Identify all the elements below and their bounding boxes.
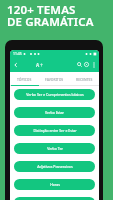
button[interactable]: Text size (34, 60, 44, 70)
button[interactable]: Back (11, 60, 20, 69)
button[interactable]: TÓPICOS (10, 72, 39, 86)
button[interactable]: Verbo Ter (14, 143, 95, 154)
staticText: Verbo Ser e Cumprimentos básicos (26, 92, 84, 97)
staticText: Verbo Ter (47, 146, 63, 151)
button[interactable]: FAVORITOS (39, 72, 69, 86)
button[interactable]: RECENTES (69, 72, 99, 86)
staticText: RECENTES (76, 77, 93, 82)
staticText: TÓPICOS (17, 77, 32, 82)
staticText: FAVORITOS (45, 77, 64, 82)
staticText: Distinção entre Ser e Estar (33, 128, 77, 133)
button[interactable]: Distinção entre Ser e Estar (14, 125, 95, 136)
button[interactable]: Horas (14, 179, 95, 190)
button[interactable]: Verbo Estar (14, 107, 95, 118)
staticText: DE GRAMÁTICA (7, 14, 94, 30)
staticText: A (36, 62, 40, 68)
button[interactable]: Dias da Semana (14, 197, 95, 200)
staticText: Horas (50, 182, 60, 187)
button[interactable]: Search (75, 60, 84, 69)
staticText: Verbo Estar (45, 110, 64, 115)
button[interactable]: Help (82, 60, 91, 69)
button[interactable]: More options (89, 60, 98, 69)
button[interactable]: Verbo Ser e Cumprimentos básicos (14, 89, 95, 100)
staticText: Adjetivos Possessivos (37, 164, 73, 169)
staticText: 11:45 (13, 51, 22, 56)
button[interactable]: Adjetivos Possessivos (14, 161, 95, 172)
staticText: 120+ TEMAS (7, 2, 76, 18)
